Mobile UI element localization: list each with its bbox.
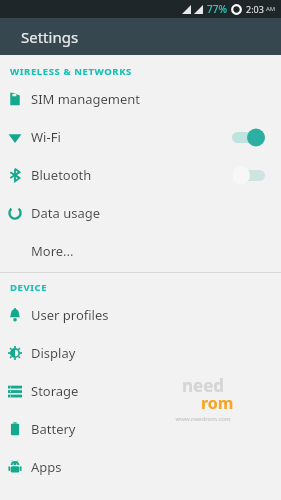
staticText: Wi-Fi (31, 128, 61, 146)
button[interactable]: Storage (0, 372, 281, 410)
staticText: Display (31, 344, 76, 362)
staticText: Data usage (31, 204, 101, 222)
button[interactable]: User profiles (0, 296, 281, 334)
button[interactable]: More... (0, 232, 281, 270)
staticText: Bluetooth (31, 166, 92, 184)
staticText: WIRELESS & NETWORKS (10, 65, 132, 78)
staticText: Settings (21, 27, 79, 47)
button[interactable]: Wi-Fi (0, 118, 281, 156)
staticText: 77% (207, 2, 227, 16)
button[interactable]: Display (0, 334, 281, 372)
button[interactable]: Bluetooth (0, 156, 281, 194)
staticText: SIM management (31, 90, 141, 108)
staticText: More... (31, 242, 74, 260)
staticText: 2:03 (246, 3, 264, 15)
button[interactable]: Data usage (0, 194, 281, 232)
button[interactable]: Battery (0, 410, 281, 448)
staticText: www.needrom.com (175, 415, 231, 423)
staticText: AM (266, 5, 276, 13)
staticText: need (182, 374, 225, 397)
button[interactable]: Apps (0, 448, 281, 486)
staticText: rom (201, 392, 234, 414)
staticText: Battery (31, 420, 76, 438)
staticText: Storage (31, 382, 79, 400)
staticText: DEVICE (10, 281, 48, 294)
staticText: Apps (31, 458, 62, 476)
staticText: User profiles (31, 306, 109, 324)
button[interactable]: SIM management (0, 80, 281, 118)
